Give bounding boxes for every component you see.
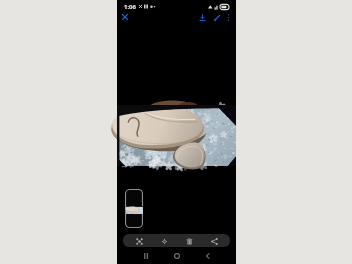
button[interactable]: Edit [211,11,223,23]
button[interactable]: More options [222,11,234,23]
button[interactable]: Download [196,11,208,23]
button[interactable]: Delete [180,235,198,247]
button[interactable]: Add to album [155,235,173,247]
staticText: 1:06 [124,3,136,11]
button[interactable]: Home [169,248,185,264]
button[interactable]: Bixby Vision [130,235,148,247]
button[interactable]: Close [119,11,131,23]
button[interactable]: Back [200,248,216,264]
button[interactable]: Share [205,235,223,247]
button[interactable]: Recents [138,248,154,264]
button[interactable]: Selected photo [125,189,143,228]
